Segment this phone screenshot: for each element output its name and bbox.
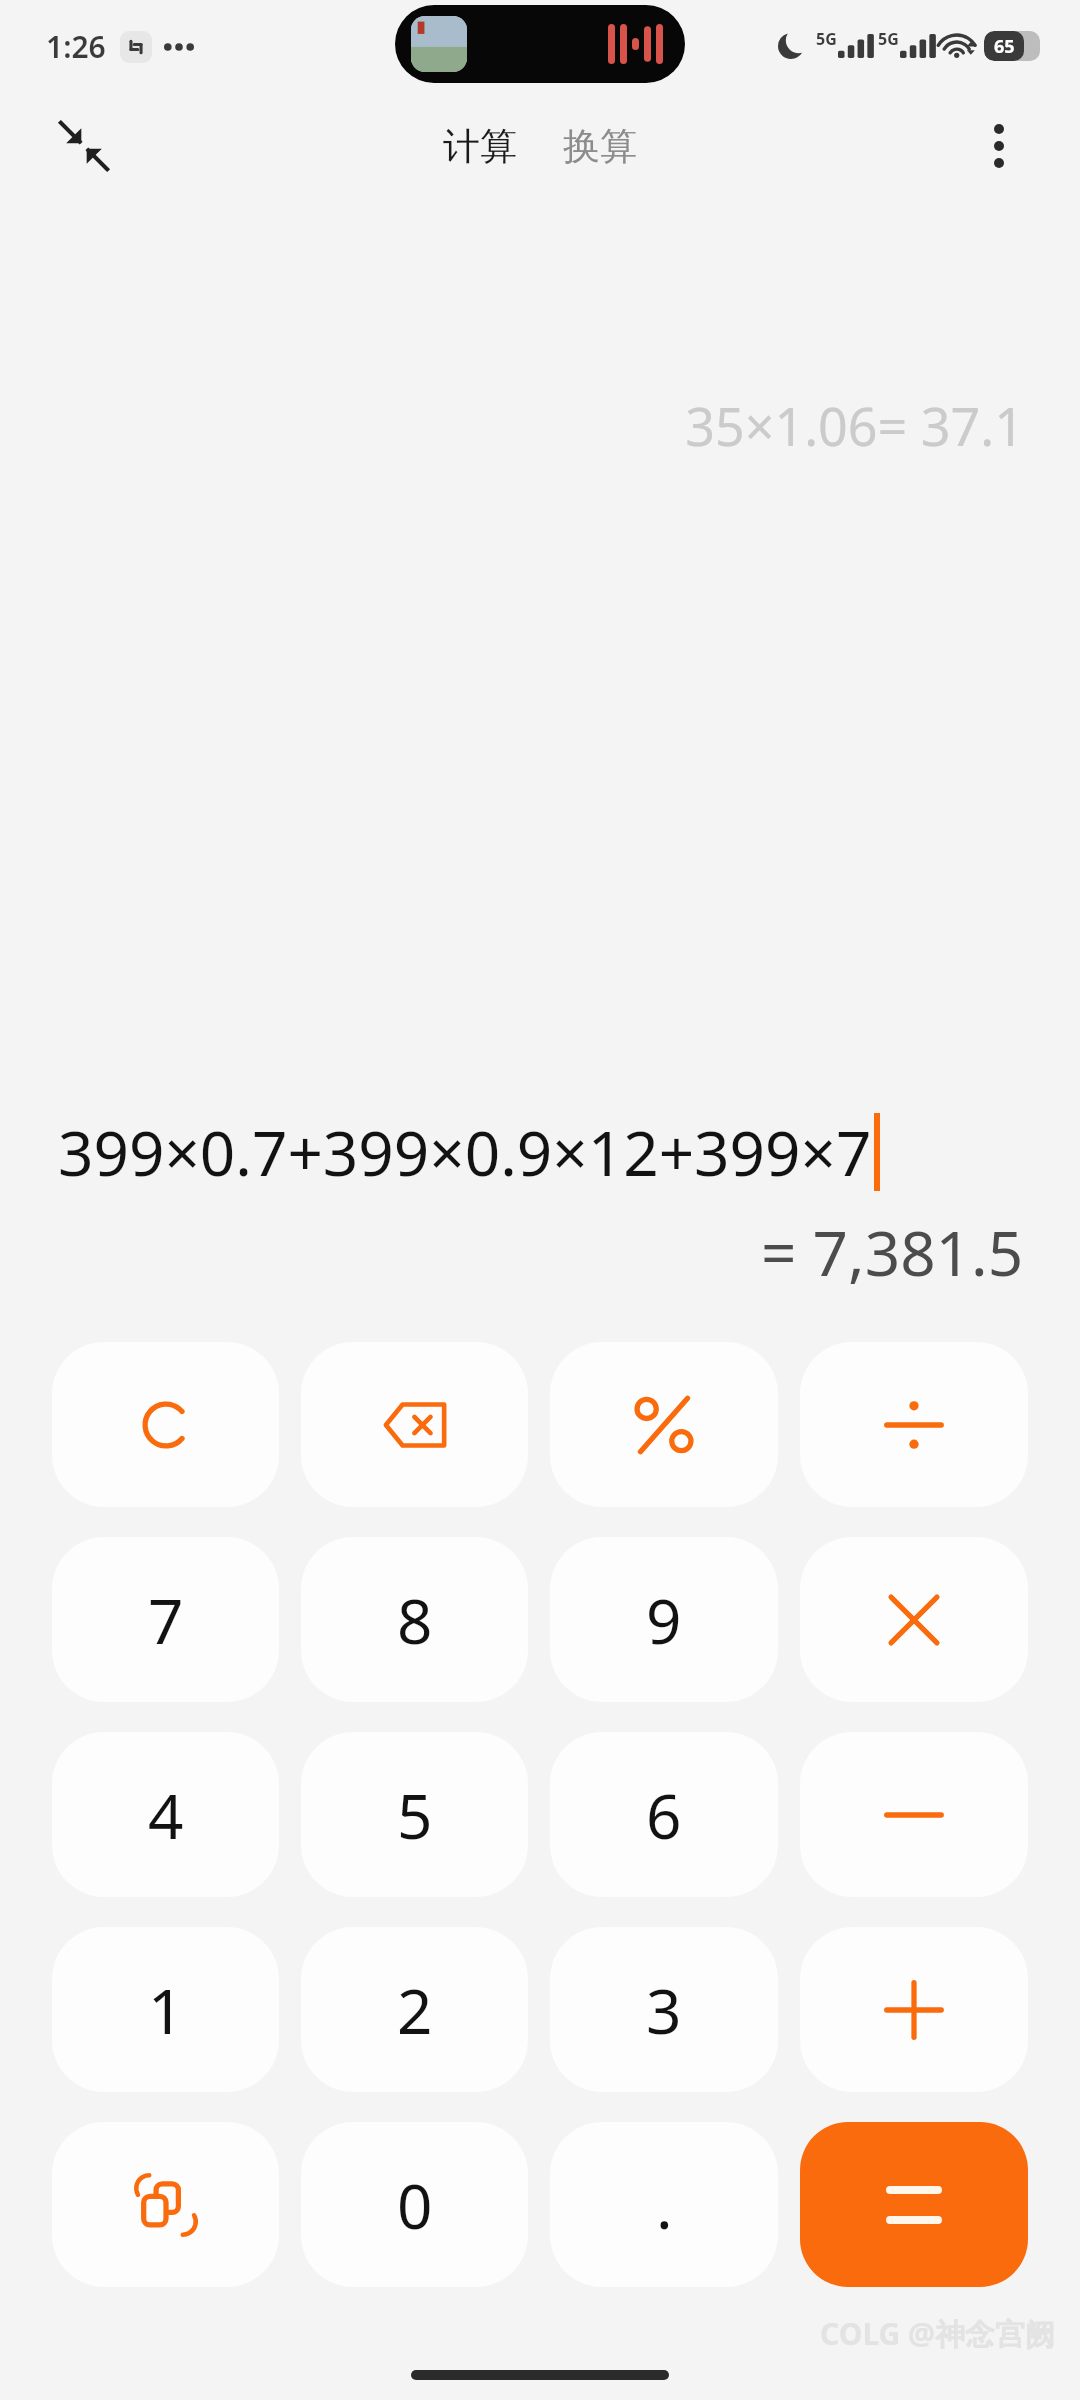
button[interactable]: Collapse (48, 110, 120, 182)
button[interactable]: Equals (800, 2122, 1028, 2287)
button[interactable]: 0 (301, 2122, 528, 2287)
button[interactable]: Plus (800, 1927, 1028, 2092)
staticText: 换算 (563, 123, 637, 170)
staticText: 399×0.7+399×0.9×12+399×7 (58, 1110, 872, 1194)
staticText: 计算 (443, 123, 517, 170)
button[interactable]: 7 (52, 1537, 279, 1702)
button[interactable]: 计算 (433, 115, 527, 178)
button[interactable]: Backspace (301, 1342, 528, 1507)
button[interactable]: 5 (301, 1732, 528, 1897)
staticText: 9 (646, 1578, 682, 1662)
staticText: 1:26 (46, 26, 106, 67)
button[interactable]: Divide (800, 1342, 1028, 1507)
staticText: 3 (646, 1968, 682, 2052)
button[interactable]: Percent (550, 1342, 778, 1507)
button[interactable]: More options (964, 111, 1034, 181)
staticText: 4 (148, 1773, 184, 1857)
staticText: 5G (878, 28, 899, 50)
staticText: 7 (148, 1578, 184, 1662)
staticText: 5 (397, 1773, 433, 1857)
staticText: 2 (397, 1968, 433, 2052)
button[interactable]: 1 (52, 1927, 279, 2092)
button[interactable]: Clear (52, 1342, 279, 1507)
button[interactable]: Multiply (800, 1537, 1028, 1702)
button[interactable]: . (550, 2122, 778, 2287)
button[interactable]: 2 (301, 1927, 528, 2092)
button[interactable]: 换算 (553, 115, 647, 178)
staticText: = 7,381.5 (761, 1210, 1024, 1294)
staticText: 8 (397, 1578, 433, 1662)
button[interactable]: Convert (52, 2122, 279, 2287)
staticText: 1 (148, 1968, 184, 2052)
staticText: . (656, 2163, 673, 2247)
button[interactable]: 3 (550, 1927, 778, 2092)
staticText: COLG @神念宫阙 (820, 2313, 1056, 2354)
button[interactable]: 9 (550, 1537, 778, 1702)
button[interactable]: 4 (52, 1732, 279, 1897)
button[interactable]: Minus (800, 1732, 1028, 1897)
staticText: 6 (646, 1773, 682, 1857)
staticText: 65 (994, 34, 1015, 59)
button[interactable]: 8 (301, 1537, 528, 1702)
staticText: 35×1.06= 37.1 (685, 390, 1024, 461)
staticText: 0 (397, 2163, 433, 2247)
staticText: 5G (816, 28, 837, 50)
button[interactable]: 6 (550, 1732, 778, 1897)
